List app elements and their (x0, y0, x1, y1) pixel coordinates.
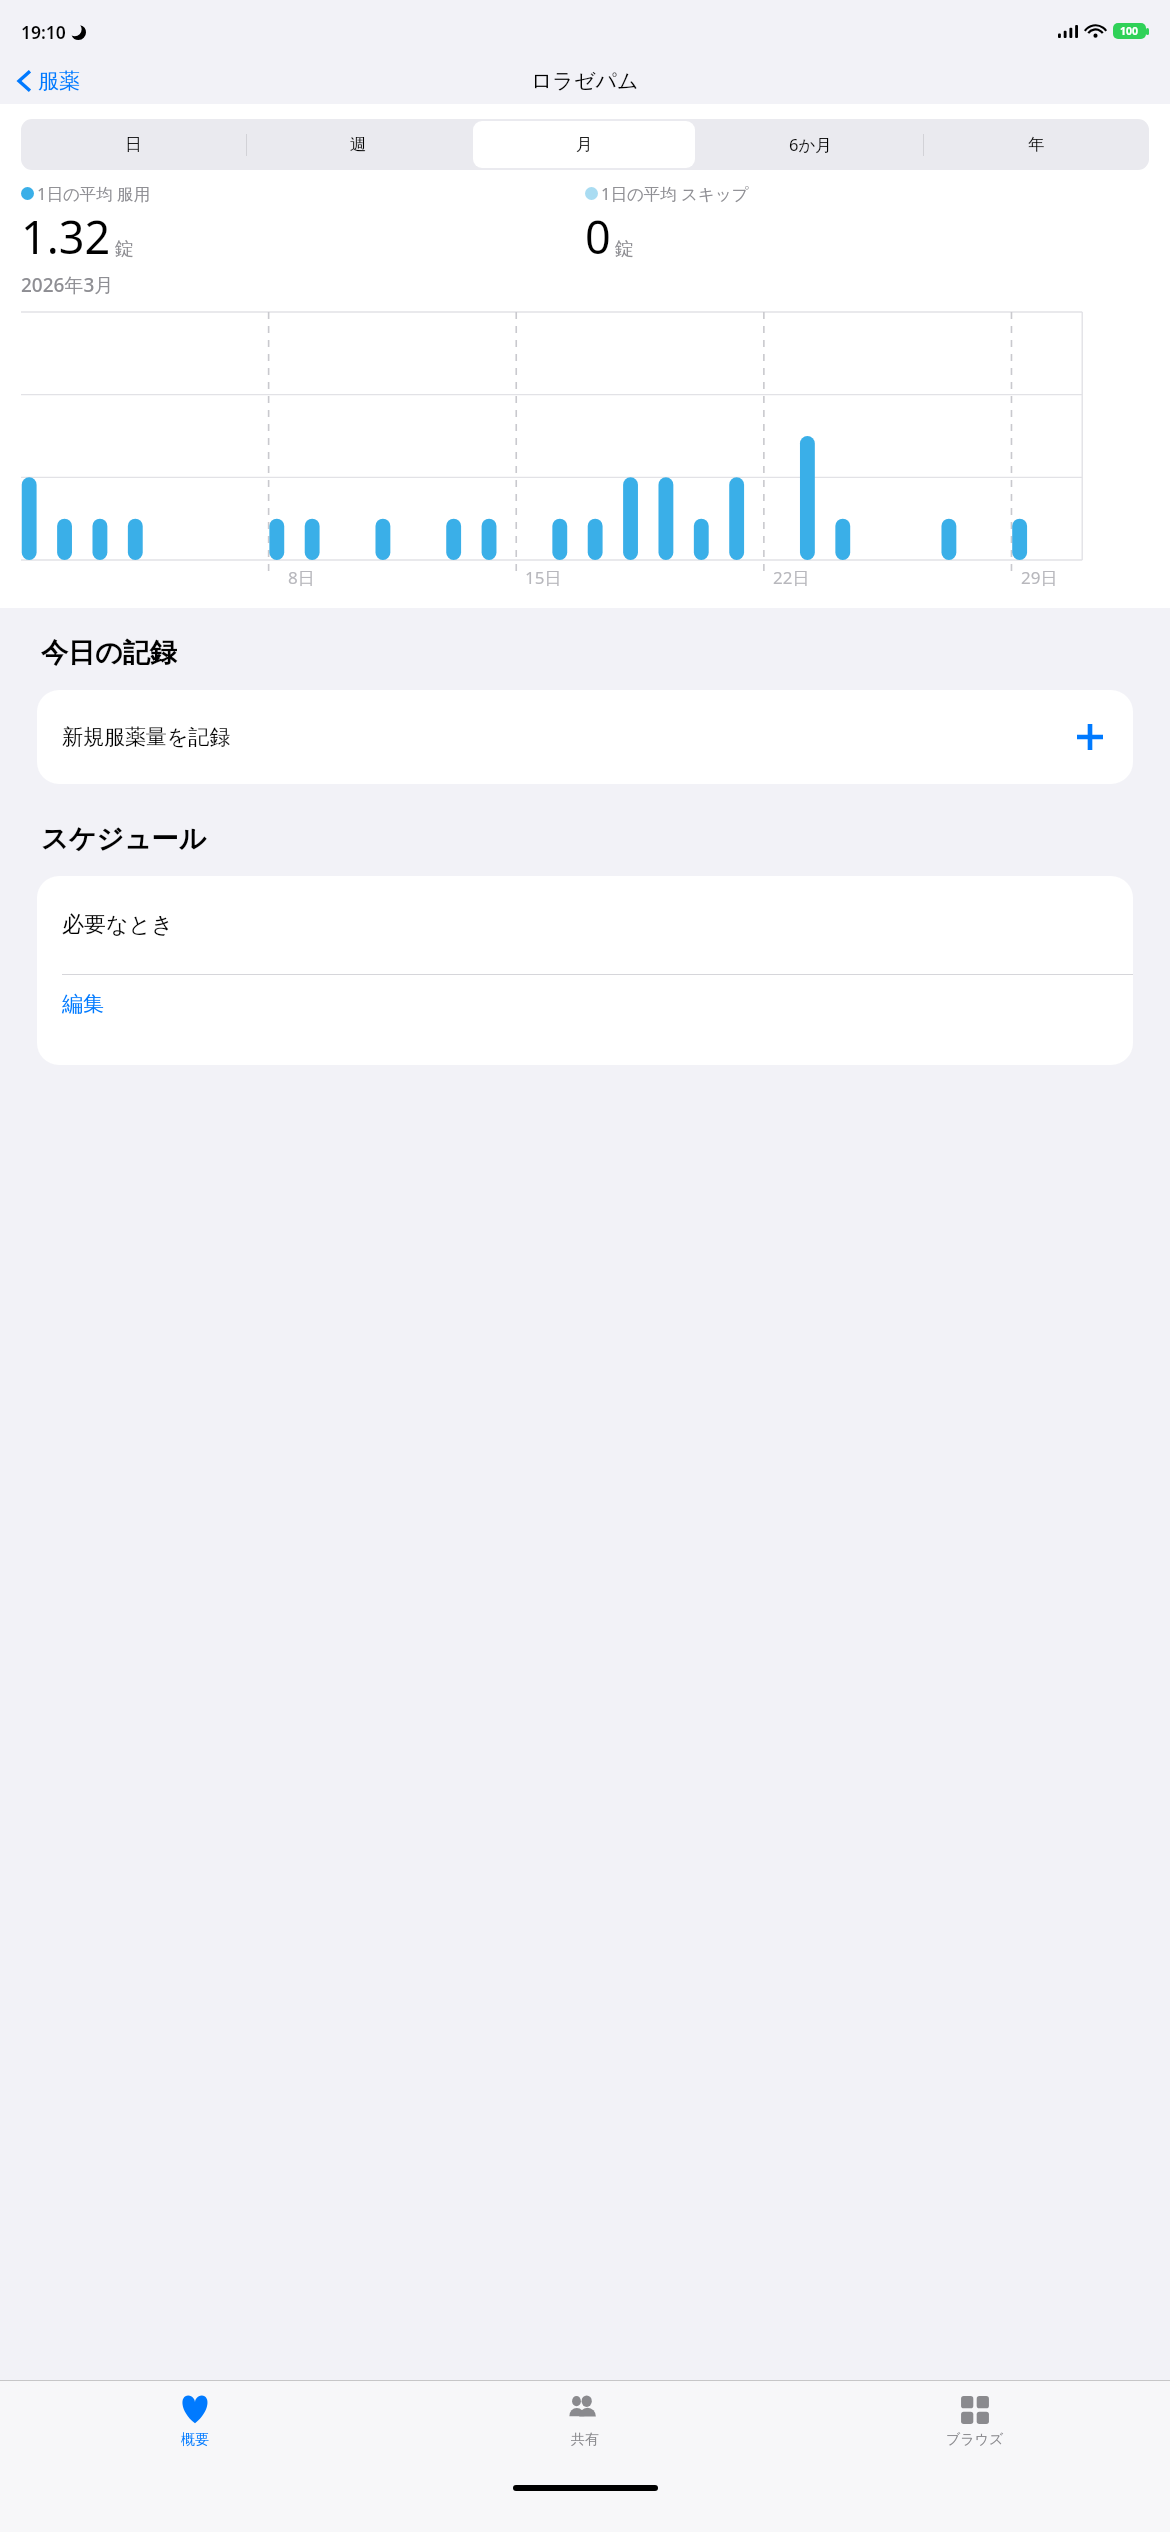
button[interactable]: 新規服薬量を記録 (37, 690, 1133, 784)
staticText: 錠 (615, 237, 634, 261)
button[interactable]: 年 (923, 119, 1149, 170)
staticText: 29日 (1021, 566, 1058, 589)
staticText: 週 (350, 134, 367, 155)
staticText: 1日の平均 スキップ (601, 182, 749, 205)
button[interactable]: 週 (246, 119, 471, 170)
staticText: 日 (125, 134, 142, 155)
staticText: 8日 (288, 566, 315, 589)
staticText: 2026年3月 (21, 272, 114, 298)
button[interactable]: 共有 (390, 2381, 780, 2479)
staticText: 年 (1028, 134, 1045, 155)
staticText: 編集 (62, 991, 104, 1017)
staticText: 共有 (571, 2431, 599, 2449)
staticText: 22日 (773, 566, 810, 589)
staticText: 0 (585, 206, 611, 267)
staticText: 月 (576, 134, 593, 155)
button[interactable]: 概要 (0, 2381, 390, 2479)
staticText: 錠 (115, 237, 134, 261)
button[interactable]: 服薬 (12, 64, 86, 98)
staticText: 服薬 (38, 68, 80, 94)
staticText: 1.32 (21, 206, 111, 267)
staticText: 6か月 (789, 133, 832, 156)
button[interactable]: ブラウズ (780, 2381, 1170, 2479)
button[interactable]: 必要なとき (37, 876, 1133, 974)
staticText: ロラゼパム (531, 68, 639, 94)
staticText: 必要なとき (62, 911, 174, 939)
staticText: 15日 (525, 566, 562, 589)
staticText: 1日の平均 服用 (37, 182, 151, 205)
staticText: スケジュール (41, 822, 207, 856)
staticText: ブラウズ (946, 2431, 1004, 2449)
button[interactable]: 月 (471, 119, 697, 170)
button[interactable]: 6か月 (697, 119, 923, 170)
staticText: 今日の記録 (41, 636, 177, 670)
other: 新規服薬量を記録を追加 (1075, 722, 1105, 752)
staticText: 19:10 (21, 20, 66, 44)
staticText: 新規服薬量を記録 (62, 724, 231, 750)
button[interactable]: 日 (21, 119, 246, 170)
staticText: 概要 (181, 2431, 209, 2449)
staticText: 100 (1120, 24, 1139, 38)
button[interactable]: 編集 (37, 975, 1133, 1065)
